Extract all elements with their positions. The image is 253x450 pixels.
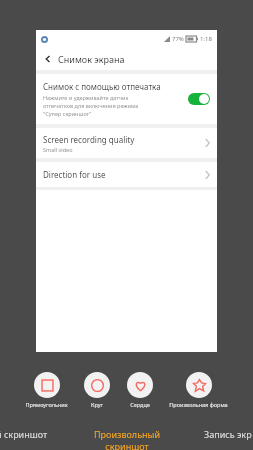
button[interactable]: Произвольный скриншот <box>72 428 182 450</box>
button[interactable]: Снимок с помощью отпечатка <box>36 74 217 124</box>
staticText: Сердце <box>130 401 150 408</box>
staticText: Запись экр <box>204 428 252 440</box>
staticText: й скриншот <box>0 428 48 440</box>
button[interactable]: Screen recording quality <box>36 128 217 158</box>
staticText: Direction for use <box>43 169 205 180</box>
button[interactable]: Запись экр <box>182 428 253 450</box>
staticText: Small video <box>43 146 73 153</box>
button[interactable]: й скриншот <box>0 428 72 450</box>
button[interactable]: Toggle fingerprint screenshot <box>188 93 210 105</box>
button[interactable]: Direction for use <box>36 162 217 187</box>
other: Back <box>42 53 54 65</box>
staticText: Прямоугольник <box>25 401 68 408</box>
staticText: 77% <box>172 35 184 43</box>
staticText: Снимок экрана <box>58 53 125 65</box>
button[interactable]: Прямоугольник <box>24 372 69 408</box>
staticText: 1:18 <box>200 35 212 43</box>
staticText: Screen recording quality <box>43 134 135 145</box>
button[interactable]: Back <box>36 48 217 70</box>
staticText: Произвольный скриншот <box>72 428 182 450</box>
button[interactable]: Произвольная форма <box>168 372 229 408</box>
button[interactable]: Сердце <box>126 372 154 408</box>
staticText: Круг <box>91 401 103 408</box>
button[interactable]: Круг <box>83 372 111 408</box>
staticText: Произвольная форма <box>169 401 228 408</box>
staticText: Нажмите и удерживайте датчик отпечатков … <box>43 94 139 118</box>
staticText: Снимок с помощью отпечатка <box>43 81 161 92</box>
